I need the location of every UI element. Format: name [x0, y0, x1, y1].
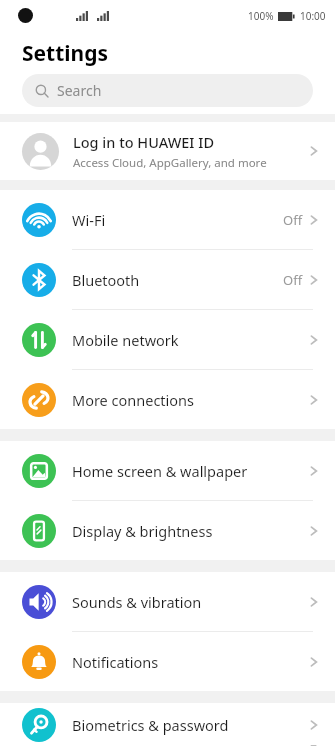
staticText: Wi-Fi	[72, 210, 283, 230]
staticText: Search	[57, 81, 102, 100]
button[interactable]: Search	[22, 74, 313, 107]
button[interactable]: Home screen and wallpaper	[0, 441, 335, 500]
staticText: 10:00	[300, 9, 326, 23]
other: Display and brightness	[22, 514, 56, 548]
other: Wi-Fi	[22, 203, 56, 237]
button[interactable]: More connections	[0, 370, 335, 429]
other: Notifications	[22, 645, 56, 679]
other: Sounds and vibration	[22, 585, 56, 619]
button[interactable]: Bluetooth	[0, 250, 335, 309]
other: Home screen and wallpaper	[22, 454, 56, 488]
staticText: Notifications	[72, 652, 310, 672]
staticText: 100%	[248, 9, 274, 23]
button[interactable]: Wi-Fi	[0, 190, 335, 249]
other: Biometrics and password	[22, 708, 56, 742]
staticText: Settings	[22, 39, 109, 68]
button[interactable]: Notifications	[0, 632, 335, 691]
other: Bluetooth	[22, 263, 56, 297]
other: More connections	[22, 383, 56, 417]
staticText: Home screen & wallpaper	[72, 461, 310, 481]
staticText: Biometrics & password	[72, 715, 310, 735]
staticText: More connections	[72, 390, 310, 410]
staticText: Bluetooth	[72, 270, 283, 290]
other: Mobile network	[22, 323, 56, 357]
staticText: Display & brightness	[72, 521, 310, 541]
staticText: Off	[283, 211, 303, 229]
staticText: Log in to HUAWEI ID	[73, 132, 214, 152]
button[interactable]: Log in to HUAWEI ID	[0, 122, 335, 180]
button[interactable]: Sounds and vibration	[0, 572, 335, 631]
button[interactable]: Mobile network	[0, 310, 335, 369]
button[interactable]: Biometrics and password	[0, 703, 335, 746]
staticText: Off	[283, 271, 303, 289]
button[interactable]: Display and brightness	[0, 501, 335, 560]
staticText: Access Cloud, AppGallery, and more	[73, 155, 267, 171]
staticText: Sounds & vibration	[72, 592, 310, 612]
staticText: Mobile network	[72, 330, 310, 350]
